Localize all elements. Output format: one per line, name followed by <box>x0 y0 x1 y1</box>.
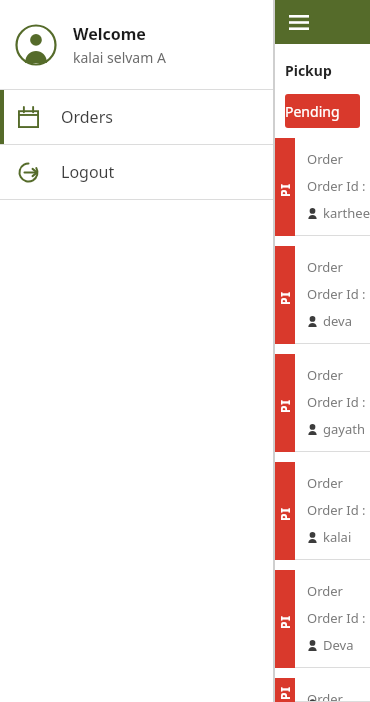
button[interactable]: PICKUP <box>275 678 370 702</box>
staticText: Order Posted Date : <box>307 258 370 276</box>
staticText: Order Posted Date : <box>307 690 370 702</box>
button[interactable]: Welcome <box>0 0 273 89</box>
staticText: PICKUP <box>277 501 293 521</box>
button[interactable]: Orders <box>0 90 273 144</box>
staticText: Logout <box>61 161 115 183</box>
staticText: PICKUP <box>277 609 293 629</box>
button[interactable]: Open navigation drawer <box>286 9 312 35</box>
button[interactable]: PICKUP <box>275 354 370 452</box>
staticText: PICKUP <box>277 177 293 197</box>
staticText: Pending Orders <box>285 102 360 121</box>
staticText: Order Id : <box>307 609 369 627</box>
button[interactable]: PICKUP <box>275 570 370 668</box>
staticText: Order Posted Date : <box>307 150 370 168</box>
button[interactable]: Logout <box>0 145 273 199</box>
staticText: Order Posted Date : <box>307 366 370 384</box>
staticText: Order Posted Date : <box>307 474 370 492</box>
staticText: Welcome <box>73 23 146 45</box>
staticText: PICKUP <box>277 285 293 305</box>
staticText: Deva Kumar <box>323 636 370 654</box>
staticText: Pickup Orders <box>285 61 370 80</box>
button[interactable]: PICKUP <box>275 462 370 560</box>
staticText: PICKUP <box>277 680 293 700</box>
staticText: Order Posted Date : <box>307 582 370 600</box>
button[interactable]: PICKUP <box>275 246 370 344</box>
staticText: PICKUP <box>277 393 293 413</box>
staticText: Orders <box>61 106 113 128</box>
staticText: kalai selvam <box>323 528 370 546</box>
button[interactable]: PICKUP <box>275 138 370 236</box>
staticText: gayathri R <box>323 420 370 438</box>
staticText: Order Id : <box>307 393 369 411</box>
staticText: deva kumar <box>323 312 370 330</box>
button[interactable]: Pending Orders <box>285 94 360 128</box>
staticText: Order Id : <box>307 177 369 195</box>
staticText: kalai selvam A <box>73 48 166 67</box>
staticText: kartheeka S <box>323 204 370 222</box>
staticText: Order Id : <box>307 285 369 303</box>
staticText: Order Id : <box>307 501 369 519</box>
